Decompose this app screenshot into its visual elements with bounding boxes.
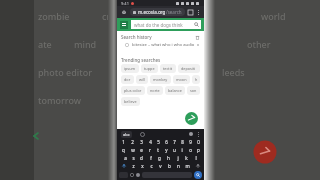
button[interactable]: abc	[123, 132, 130, 137]
button[interactable]: Shift	[119, 163, 128, 169]
staticText: y	[165, 147, 168, 153]
button[interactable]: e	[138, 147, 145, 153]
button[interactable]: More	[197, 132, 200, 137]
button[interactable]: monkey	[150, 75, 171, 84]
staticText: 5	[157, 139, 160, 145]
button[interactable]: balance	[165, 86, 185, 95]
staticText: k	[185, 155, 188, 161]
staticText: mind	[74, 38, 97, 50]
button[interactable]: a	[122, 155, 128, 161]
staticText: x	[141, 163, 144, 169]
button[interactable]: c	[148, 163, 155, 169]
button[interactable]: j	[174, 155, 181, 161]
staticText: 3	[140, 139, 143, 145]
staticText: moon	[176, 77, 187, 82]
button[interactable]: p	[195, 147, 201, 153]
staticText: 9	[189, 139, 192, 145]
button[interactable]: l	[192, 155, 199, 161]
button[interactable]: 6	[163, 139, 169, 145]
button[interactable]: Tabs	[188, 10, 193, 15]
staticText: Trending searches	[121, 57, 161, 63]
button[interactable]: w	[129, 147, 136, 153]
button[interactable]: moon	[173, 75, 190, 84]
button[interactable]: 9	[187, 139, 193, 145]
staticText: believe	[124, 99, 137, 104]
button[interactable]: bitesize – what who i who audio	[121, 42, 200, 48]
button[interactable]: k	[183, 155, 190, 161]
button[interactable]: sonnen	[187, 86, 200, 95]
button[interactable]: Search	[194, 171, 202, 179]
staticText: /search	[166, 9, 182, 15]
staticText: ate	[38, 38, 52, 50]
button[interactable]: g	[156, 155, 163, 161]
button[interactable]: norte	[147, 86, 163, 95]
button[interactable]: y	[163, 147, 169, 153]
staticText: g	[158, 155, 161, 161]
button[interactable]: x	[139, 163, 146, 169]
button[interactable]: v	[157, 163, 164, 169]
button[interactable]: plus color	[121, 86, 145, 95]
button[interactable]: dor	[121, 75, 134, 84]
button[interactable]: s	[130, 155, 136, 161]
button[interactable]: 0	[195, 139, 201, 145]
button[interactable]: Settings	[189, 132, 193, 136]
staticText: s	[132, 155, 135, 161]
button[interactable]: z	[130, 163, 137, 169]
button[interactable]: o	[187, 147, 193, 153]
button[interactable]: will	[136, 75, 148, 84]
button[interactable]: d	[138, 155, 145, 161]
staticText: u	[173, 147, 176, 153]
staticText: r	[149, 147, 151, 153]
button[interactable]: believe	[121, 97, 140, 106]
staticText: 1	[122, 139, 125, 145]
staticText: ipsum	[124, 66, 136, 71]
button[interactable]: u	[171, 147, 177, 153]
button[interactable]: tectit	[160, 64, 176, 73]
button[interactable]: Home	[121, 9, 127, 15]
button[interactable]: Delete history	[195, 35, 200, 40]
button[interactable]: Backspace	[193, 163, 202, 169]
staticText: balance	[168, 88, 182, 93]
button[interactable]: t	[155, 147, 161, 153]
button[interactable]: 5	[155, 139, 161, 145]
staticText: c	[150, 163, 153, 169]
button[interactable]: GIF	[140, 132, 145, 137]
button[interactable]: ipsum	[121, 64, 139, 73]
button[interactable]: b	[166, 163, 173, 169]
button[interactable]: Emoji	[130, 173, 134, 177]
button[interactable]: 1	[120, 139, 127, 145]
button[interactable]: Menu	[122, 23, 126, 27]
staticText: abc	[123, 132, 130, 137]
button[interactable]: 7	[171, 139, 177, 145]
button[interactable]: h	[165, 155, 172, 161]
button[interactable]: f	[147, 155, 154, 161]
button[interactable]: m.ecosia.org	[133, 8, 182, 16]
button[interactable]: Compose	[185, 112, 198, 125]
button[interactable]: m	[184, 163, 191, 169]
button[interactable]: 3	[138, 139, 145, 145]
staticText: photo editor	[38, 66, 92, 78]
button[interactable]: r	[147, 147, 153, 153]
staticText: e	[140, 147, 143, 153]
button[interactable]: Voice	[136, 173, 140, 177]
staticText: will	[139, 77, 145, 82]
button[interactable]: 2	[129, 139, 136, 145]
button[interactable]: More options	[196, 10, 200, 15]
staticText: d	[140, 155, 143, 161]
button[interactable]: 8	[179, 139, 185, 145]
button[interactable]: what do the dogs think	[134, 20, 189, 29]
button[interactable]: Search	[192, 20, 201, 29]
staticText: sonnen	[190, 88, 197, 93]
button[interactable]: tuppe	[141, 64, 158, 73]
staticText: monkey	[153, 77, 168, 82]
button[interactable]: 4	[147, 139, 153, 145]
button[interactable]: deposition	[178, 64, 200, 73]
button[interactable]: hlm	[192, 75, 200, 84]
button[interactable]: q	[120, 147, 127, 153]
staticText: p	[197, 147, 200, 153]
button[interactable]: n	[175, 163, 182, 169]
button[interactable]: i	[179, 147, 185, 153]
staticText: 2	[131, 139, 134, 145]
